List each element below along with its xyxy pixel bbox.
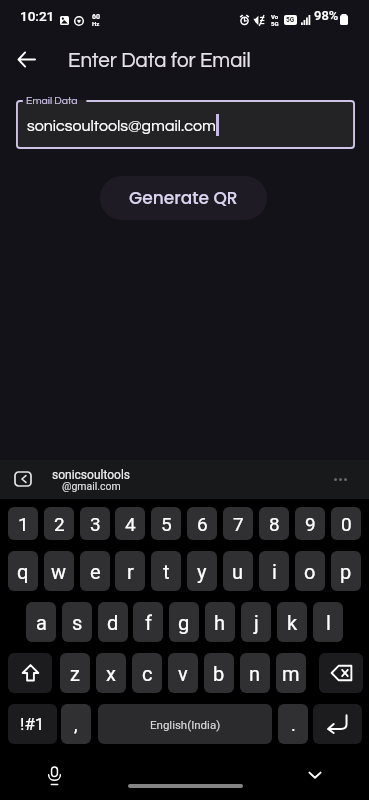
staticText: r <box>127 560 134 583</box>
button[interactable]: w <box>44 551 74 591</box>
button[interactable]: v <box>168 653 198 693</box>
staticText: a <box>36 611 47 634</box>
staticText: u <box>232 560 244 583</box>
staticText: o <box>304 560 316 583</box>
staticText: d <box>107 611 119 634</box>
staticText: 60 <box>92 13 101 21</box>
button[interactable]: Backspace <box>319 653 363 693</box>
staticText: 2 <box>54 513 65 535</box>
button[interactable]: Enter <box>313 704 362 744</box>
staticText: z <box>70 662 80 685</box>
button[interactable]: p <box>331 551 361 591</box>
button[interactable]: 9 <box>295 507 325 540</box>
staticText: 7 <box>233 513 244 535</box>
button[interactable]: a <box>26 602 56 642</box>
button[interactable]: Voice input <box>44 765 65 786</box>
staticText: y <box>197 560 207 583</box>
staticText: 8 <box>269 513 280 535</box>
staticText: Email Data <box>26 95 78 106</box>
staticText: 9 <box>305 513 316 535</box>
button[interactable]: 6 <box>187 507 217 540</box>
staticText: w <box>51 560 67 583</box>
staticText: e <box>90 560 101 583</box>
staticText: sonicsoultools@gmail.com <box>27 118 216 134</box>
button[interactable]: Previous suggestions <box>15 472 31 486</box>
staticText: b <box>213 662 225 685</box>
button[interactable] <box>16 100 355 149</box>
staticText: k <box>287 611 298 634</box>
button[interactable]: , <box>61 704 91 744</box>
button[interactable]: r <box>115 551 145 591</box>
staticText: q <box>17 560 29 583</box>
button[interactable]: g <box>169 602 199 642</box>
button[interactable]: h <box>205 602 235 642</box>
staticText: h <box>214 611 226 634</box>
button[interactable]: 3 <box>80 507 110 540</box>
button[interactable]: k <box>277 602 307 642</box>
button[interactable]: Generate QR <box>100 176 267 220</box>
staticText: English(India) <box>150 718 221 731</box>
button[interactable]: 8 <box>259 507 289 540</box>
staticText: 0 <box>341 513 352 535</box>
button[interactable]: Shift <box>8 653 52 693</box>
staticText: Hz <box>92 20 100 27</box>
button[interactable]: m <box>276 653 306 693</box>
button[interactable]: . <box>278 704 308 744</box>
button[interactable]: d <box>98 602 128 642</box>
staticText: i <box>272 560 277 583</box>
staticText: 4 <box>125 513 136 535</box>
button[interactable]: Back <box>10 43 42 75</box>
staticText: Enter Data for Email <box>68 50 251 71</box>
staticText: 3 <box>90 513 101 535</box>
button[interactable]: f <box>133 602 163 642</box>
staticText: . <box>291 714 296 735</box>
button[interactable]: 4 <box>115 507 145 540</box>
staticText: t <box>163 560 170 583</box>
button[interactable]: o <box>295 551 325 591</box>
button[interactable]: 5 <box>151 507 181 540</box>
button[interactable]: s <box>62 602 92 642</box>
button[interactable]: sonicsoultools <box>40 462 145 496</box>
staticText: j <box>254 611 259 634</box>
staticText: n <box>249 662 261 685</box>
button[interactable]: z <box>60 653 90 693</box>
staticText: sonicsoultools <box>52 468 131 482</box>
button[interactable]: !#1 <box>8 704 57 744</box>
button[interactable]: English(India) <box>98 704 272 744</box>
staticText: 6 <box>197 513 208 535</box>
staticText: 10:21 <box>20 8 55 24</box>
staticText: 5G <box>271 20 279 27</box>
staticText: g <box>178 611 190 634</box>
button[interactable]: 7 <box>223 507 253 540</box>
staticText: v <box>178 662 188 685</box>
staticText: m <box>282 662 300 685</box>
button[interactable]: t <box>151 551 181 591</box>
staticText: p <box>340 560 352 583</box>
button[interactable]: e <box>80 551 110 591</box>
staticText: Generate QR <box>129 186 238 210</box>
button[interactable]: More options <box>334 472 360 486</box>
staticText: f <box>145 611 152 634</box>
button[interactable]: Hide keyboard <box>305 765 325 785</box>
staticText: s <box>72 611 83 634</box>
button[interactable]: l <box>313 602 343 642</box>
button[interactable]: j <box>241 602 271 642</box>
button[interactable]: i <box>259 551 289 591</box>
button[interactable]: x <box>96 653 126 693</box>
button[interactable]: b <box>204 653 234 693</box>
button[interactable]: u <box>223 551 253 591</box>
button[interactable]: 2 <box>44 507 74 540</box>
staticText: 1 <box>18 513 29 535</box>
staticText: @gmail.com <box>62 480 121 492</box>
button[interactable]: q <box>8 551 38 591</box>
staticText: 98% <box>314 8 339 23</box>
button[interactable]: 1 <box>8 507 38 540</box>
staticText: Vo <box>271 13 279 20</box>
button[interactable]: y <box>187 551 217 591</box>
staticText: !#1 <box>20 714 45 734</box>
button[interactable]: c <box>132 653 162 693</box>
staticText: 5G <box>286 16 295 24</box>
button[interactable]: 0 <box>331 507 361 540</box>
staticText: , <box>74 714 78 735</box>
button[interactable]: n <box>240 653 270 693</box>
